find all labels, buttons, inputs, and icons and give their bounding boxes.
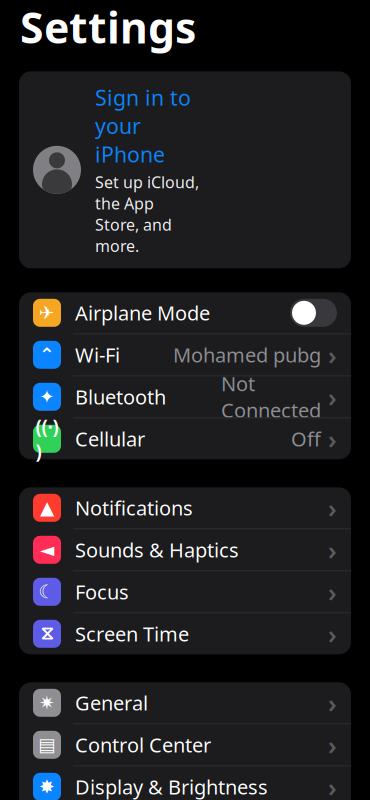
staticText: Control Center: [75, 731, 211, 758]
staticText: Sounds & Haptics: [75, 536, 239, 563]
staticText: Bluetooth: [75, 383, 166, 410]
staticText: ›: [328, 533, 337, 567]
staticText: ›: [328, 380, 337, 414]
button[interactable]: ✈: [19, 292, 351, 334]
button[interactable]: ⌃: [19, 334, 351, 376]
staticText: Display & Brightness: [75, 773, 268, 800]
staticText: Focus: [75, 578, 129, 605]
staticText: ›: [328, 422, 337, 456]
staticText: Wi-Fi: [75, 341, 120, 368]
staticText: ▲: [40, 497, 54, 518]
staticText: ⌃: [39, 344, 55, 365]
staticText: Settings: [20, 0, 196, 55]
staticText: Cellular: [75, 425, 145, 452]
staticText: ☾: [38, 581, 55, 602]
staticText: Airplane Mode: [75, 299, 210, 326]
button[interactable]: ((·)): [19, 418, 351, 459]
button[interactable]: ✷: [19, 682, 351, 724]
staticText: ›: [328, 686, 337, 720]
staticText: ›: [328, 728, 337, 762]
button[interactable]: ☾: [19, 571, 351, 613]
staticText: Notifications: [75, 494, 193, 521]
button[interactable]: ◄: [19, 529, 351, 571]
button[interactable]: ▲: [19, 487, 351, 529]
staticText: ⧖: [40, 625, 53, 643]
button[interactable]: ▤: [19, 724, 351, 766]
staticText: ◄: [40, 539, 54, 560]
button[interactable]: ✦: [19, 376, 351, 418]
staticText: Sign in to your iPhone: [95, 83, 191, 168]
button[interactable]: ⧖: [19, 613, 351, 654]
staticText: ›: [328, 770, 337, 800]
staticText: Off: [291, 425, 321, 452]
staticText: Mohamed pubg: [173, 341, 321, 368]
button[interactable]: Sign in to your iPhone: [19, 71, 351, 268]
staticText: ›: [328, 491, 337, 525]
staticText: Set up iCloud, the App Store, and more.: [95, 171, 199, 256]
staticText: General: [75, 689, 148, 716]
staticText: ›: [328, 617, 337, 651]
staticText: ✷: [39, 692, 55, 713]
staticText: ✦: [39, 386, 55, 407]
staticText: Not Connected: [221, 370, 321, 423]
button[interactable]: ✸: [19, 766, 351, 800]
staticText: ✸: [39, 776, 55, 797]
staticText: ›: [328, 338, 337, 372]
staticText: ▤: [38, 734, 56, 755]
staticText: Screen Time: [75, 620, 189, 647]
staticText: ((·)): [35, 414, 58, 464]
staticText: ›: [328, 575, 337, 609]
staticText: ✈: [39, 302, 55, 323]
